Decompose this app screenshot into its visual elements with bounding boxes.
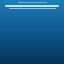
button[interactable]: Primary action bbox=[5, 5, 59, 7]
button[interactable]: Secondary action bbox=[9, 8, 56, 9]
